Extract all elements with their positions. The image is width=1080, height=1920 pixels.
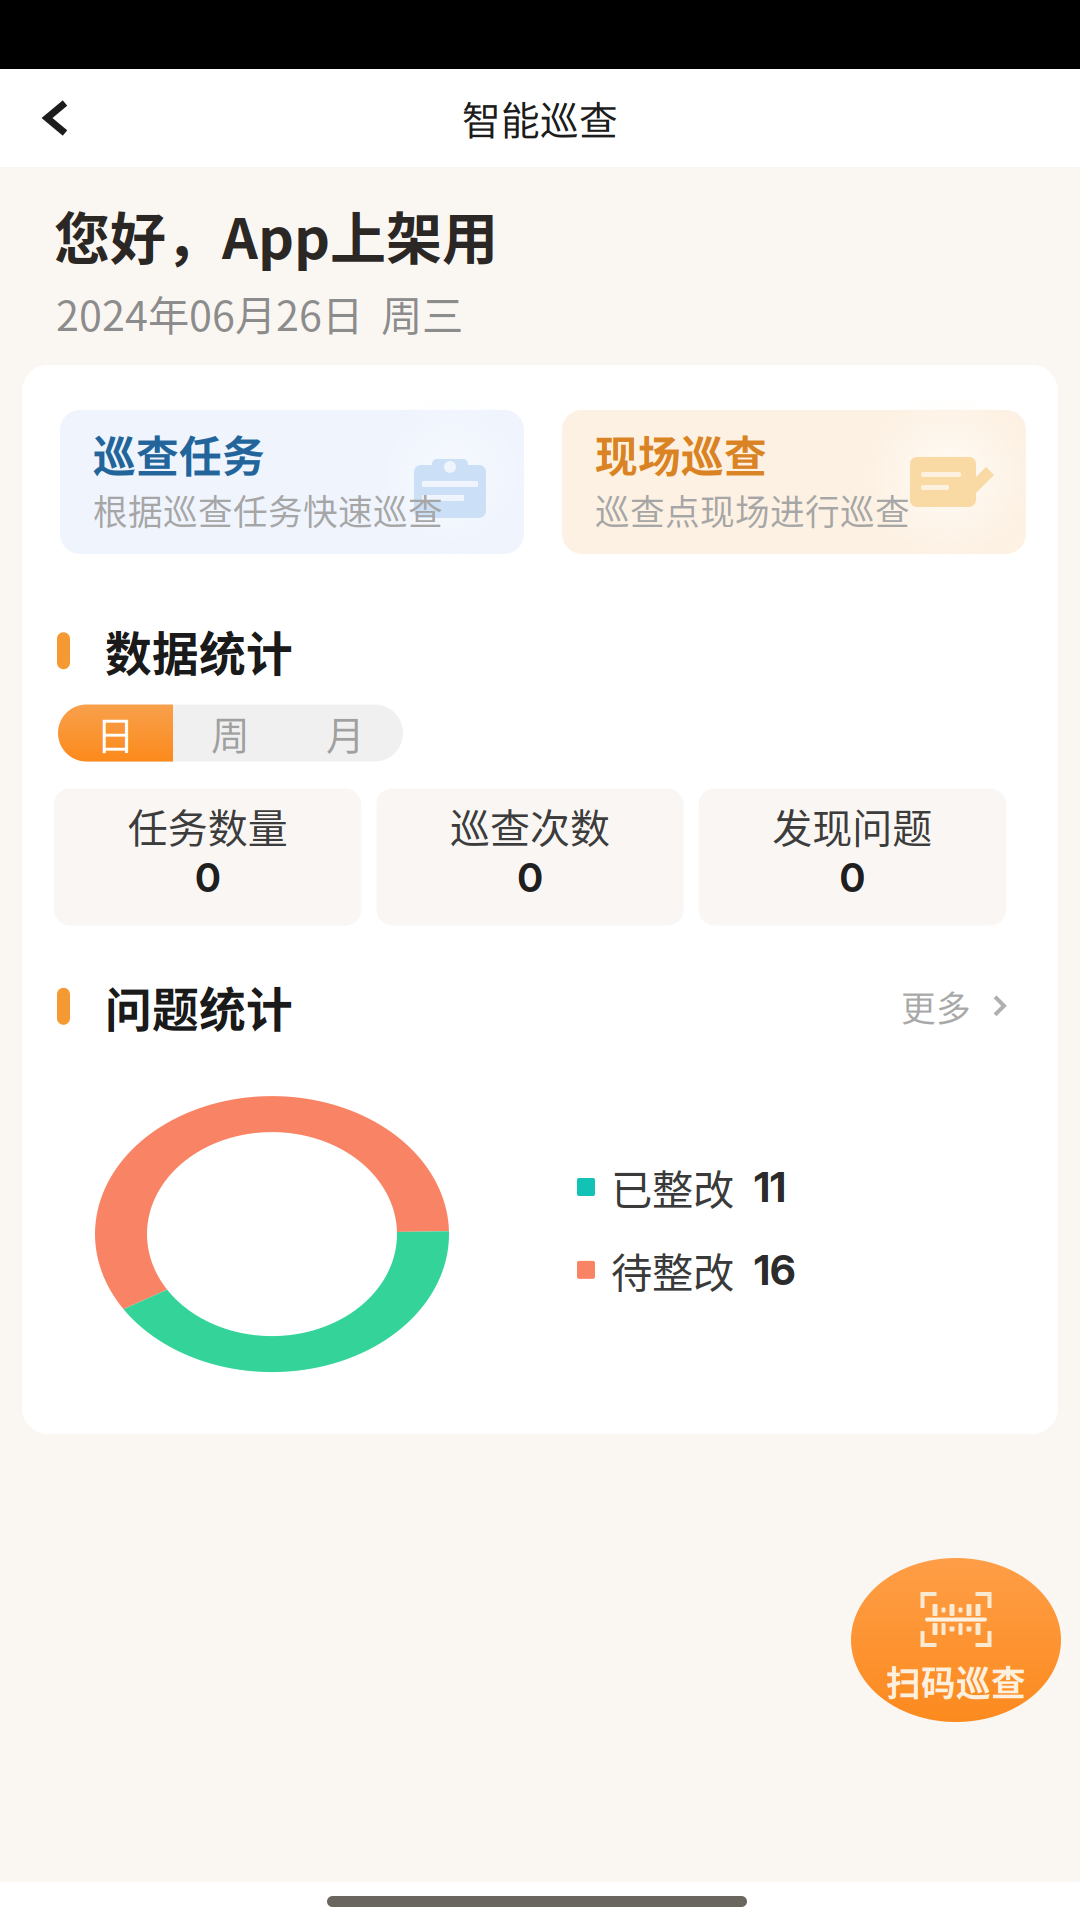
staticText: 巡查任务 — [93, 423, 265, 485]
staticText: 任务数量 — [128, 796, 288, 854]
staticText: 扫码巡查 — [886, 1656, 1026, 1706]
staticText: 周 — [211, 705, 250, 761]
staticText: 11 — [754, 1162, 786, 1212]
button[interactable]: 扫码巡查 — [851, 1558, 1061, 1722]
staticText: 您好，App上架用 — [54, 194, 498, 275]
staticText: 月 — [326, 705, 365, 761]
button[interactable]: 巡查任务 — [60, 410, 524, 554]
staticText: 数据统计 — [105, 617, 293, 684]
staticText: 更多 — [901, 981, 971, 1031]
button[interactable]: 日 — [58, 704, 173, 761]
button[interactable]: 更多 — [901, 981, 1007, 1031]
staticText: 已整改 — [611, 1157, 734, 1217]
staticText: 智能巡查 — [462, 90, 618, 146]
staticText: 16 — [754, 1245, 796, 1295]
staticText: 2024年06月26日 周三 — [56, 283, 463, 343]
staticText: 巡查次数 — [450, 796, 610, 854]
button[interactable]: 月 — [288, 704, 403, 761]
staticText: 待整改 — [611, 1240, 734, 1300]
staticText: 0 — [517, 854, 542, 901]
staticText: 巡查点现场进行巡查 — [595, 485, 910, 535]
button[interactable]: 返回 — [0, 86, 110, 150]
staticText: 问题统计 — [105, 972, 293, 1040]
staticText: 发现问题 — [772, 796, 932, 854]
staticText: 日 — [96, 705, 135, 761]
button[interactable]: 周 — [173, 704, 288, 761]
staticText: 0 — [195, 854, 220, 901]
staticText: 现场巡查 — [595, 423, 767, 485]
staticText: 根据巡查任务快速巡查 — [93, 485, 443, 535]
button[interactable]: 现场巡查 — [562, 410, 1026, 554]
staticText: 0 — [840, 854, 865, 901]
